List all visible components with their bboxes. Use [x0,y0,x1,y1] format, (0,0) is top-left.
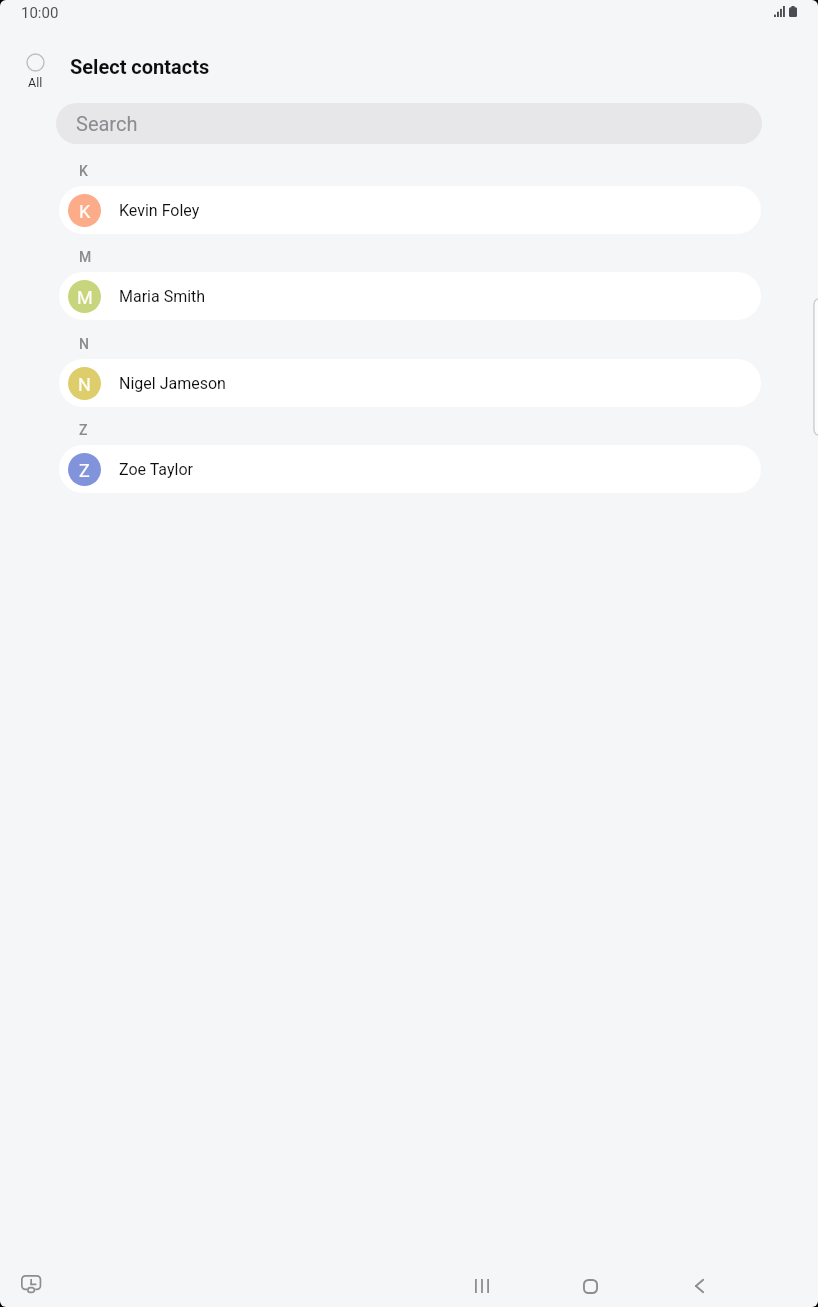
button[interactable]: Back [675,1262,723,1307]
staticText: K [79,163,88,179]
button[interactable]: Search [56,103,762,144]
staticText: M [79,249,92,265]
staticText: Zoe Taylor [119,460,193,479]
button[interactable]: Home [566,1262,614,1307]
staticText: 10:00 [21,4,59,22]
button[interactable]: Show keyboard [11,1265,51,1305]
staticText: All [28,75,43,90]
button[interactable]: Z [59,445,761,493]
button[interactable]: M [59,272,761,320]
staticText: N [78,374,91,395]
staticText: Maria Smith [119,287,206,306]
staticText: Nigel Jameson [119,374,226,393]
staticText: N [79,336,89,352]
staticText: M [77,287,93,308]
staticText: Select contacts [70,55,210,78]
button[interactable]: N [59,359,761,407]
button[interactable]: Select all [13,53,58,90]
staticText: Z [79,422,88,438]
button[interactable]: K [59,186,761,234]
staticText: Search [76,112,138,135]
staticText: Kevin Foley [119,201,200,220]
button[interactable]: Recent apps [458,1262,506,1307]
staticText: Z [79,460,90,481]
staticText: K [79,201,91,222]
